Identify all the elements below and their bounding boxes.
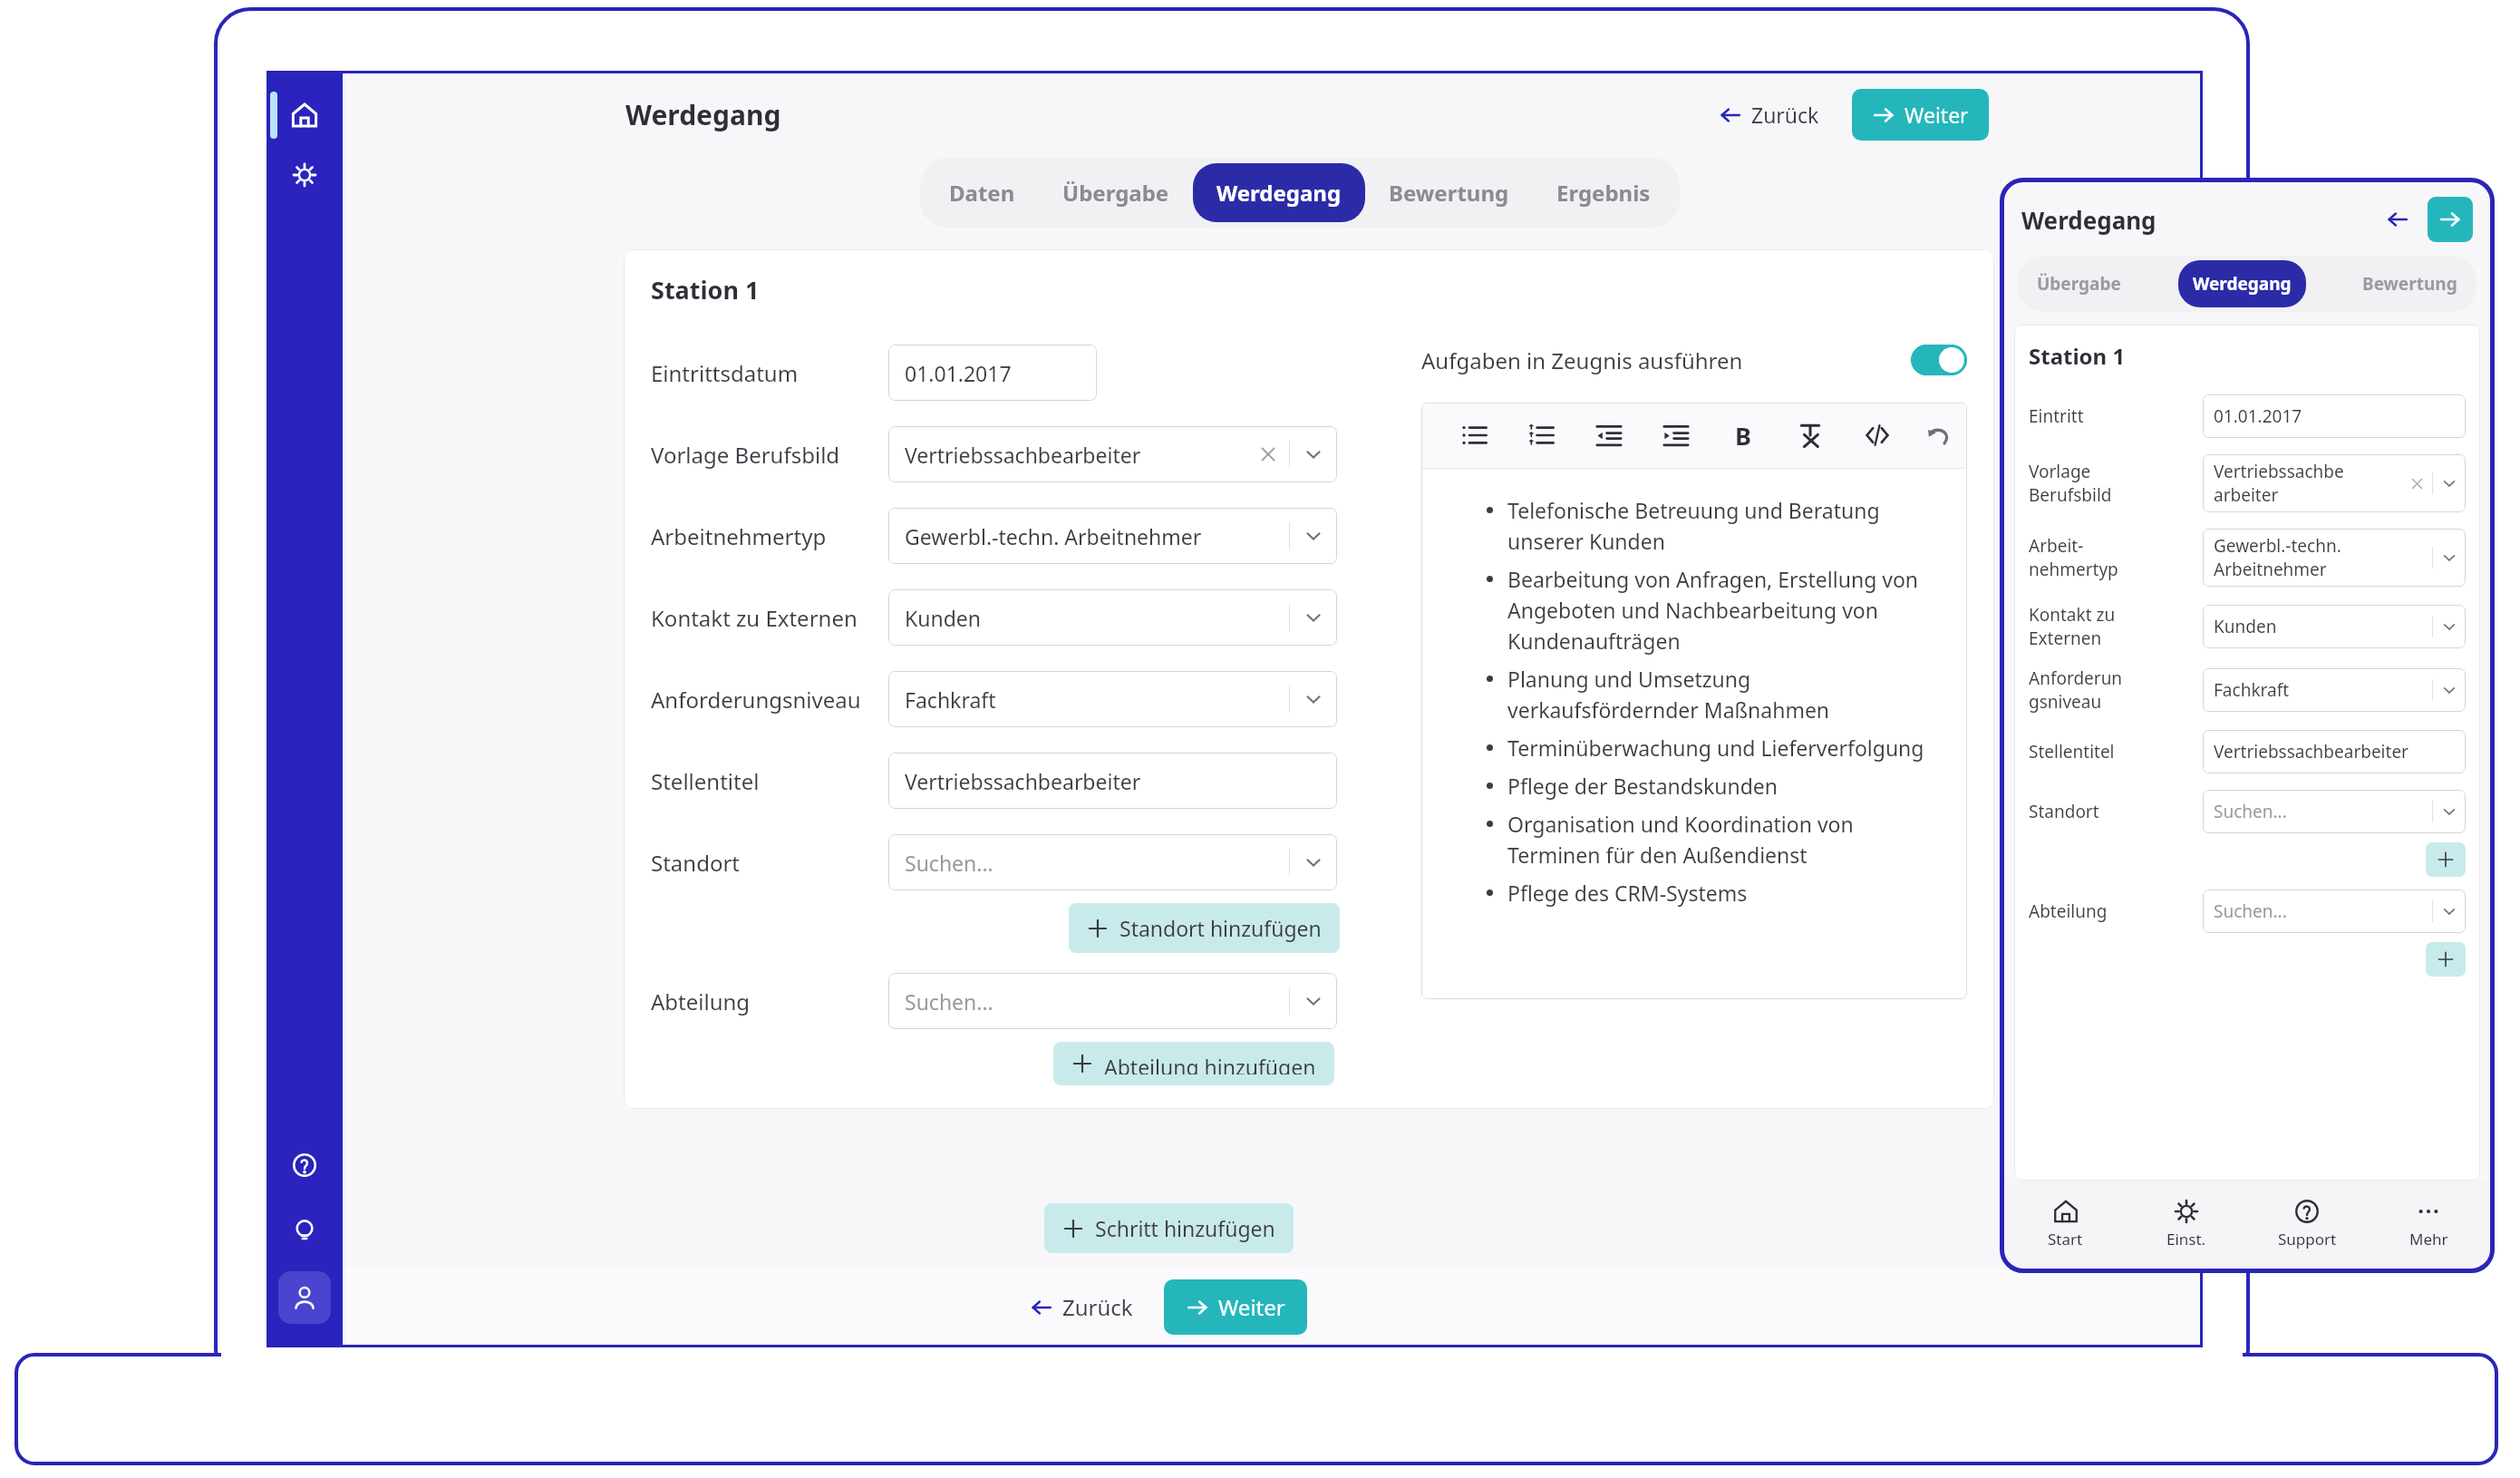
button[interactable]: Fachkraft (2203, 668, 2466, 712)
button[interactable]: Kunden (888, 589, 1337, 646)
staticText: Werdegang (1216, 178, 1342, 208)
button[interactable]: Suchen... (888, 834, 1337, 890)
button[interactable]: Mehr (2368, 1181, 2489, 1268)
button[interactable]: Übergabe (2022, 260, 2136, 307)
button[interactable]: Start (2005, 1181, 2126, 1268)
button[interactable]: Hinzufügen (2426, 942, 2466, 977)
button[interactable]: Hinzufügen (2426, 842, 2466, 877)
button[interactable]: Schritt hinzufügen (1044, 1203, 1294, 1253)
button[interactable]: Zurück (1710, 93, 1828, 136)
button[interactable]: 01.01.2017 (2203, 394, 2466, 438)
button[interactable]: Profil (278, 1271, 331, 1324)
staticText: Daten (949, 178, 1015, 208)
button[interactable]: Bewertung (1365, 163, 1533, 222)
staticText: Standort hinzufügen (1119, 914, 1322, 942)
button[interactable]: Fachkraft (888, 671, 1337, 727)
button[interactable]: Gewerbl.-techn. Arbeitnehmer (2203, 529, 2466, 587)
staticText: Station 1 (651, 273, 760, 306)
button[interactable]: Code (1844, 403, 1911, 468)
button[interactable]: Vertriebssachbearbeiter (888, 753, 1337, 809)
button[interactable]: Vertriebssachbearbeiter (2203, 730, 2466, 773)
button[interactable]: Start (280, 91, 329, 140)
button[interactable]: Zurück (1021, 1285, 1142, 1329)
staticText: Gewerbl.-techn. Arbeitnehmer (2214, 534, 2400, 581)
button[interactable]: Einstellungen (280, 151, 329, 199)
staticText: 01.01.2017 (2214, 404, 2302, 428)
staticText: Vertriebssachbe arbeiter (2214, 460, 2400, 507)
button[interactable]: Kunden (2203, 605, 2466, 648)
button[interactable]: Bewertung (2348, 260, 2472, 307)
button[interactable]: 01.01.2017 (888, 345, 1097, 401)
button[interactable]: Support (2246, 1181, 2368, 1268)
button[interactable]: Zurück (2379, 200, 2417, 238)
staticText: Suchen... (2214, 800, 2287, 823)
staticText: Vorlage Berufsbild (651, 440, 888, 470)
staticText: Eintritt (2029, 404, 2165, 428)
button[interactable]: Übergabe (1039, 163, 1193, 222)
staticText: Suchen... (905, 849, 993, 877)
staticText: Zurück (1751, 101, 1819, 129)
staticText: Vertriebssachbearbeiter (905, 767, 1141, 795)
staticText: B (1735, 419, 1751, 452)
button[interactable]: Gewerbl.-techn. Arbeitnehmer (888, 508, 1337, 564)
button[interactable]: Suchen... (2203, 890, 2466, 933)
staticText: Standort (2029, 800, 2165, 823)
button[interactable]: Daten (926, 163, 1039, 222)
staticText: Kontakt zu Externen (651, 603, 888, 633)
button[interactable]: Aufzählung (1441, 403, 1508, 468)
staticText: Weiter (1905, 101, 1969, 129)
staticText: Anforderungsniveau (651, 685, 888, 715)
button[interactable]: Format löschen (1777, 403, 1844, 468)
staticText: Bewertung (2362, 272, 2457, 296)
staticText: Pflege des CRM-Systems (1507, 879, 1748, 907)
button[interactable]: Suchen... (2203, 790, 2466, 833)
staticText: Stellentitel (2029, 740, 2165, 763)
staticText: Abteilung (2029, 899, 2165, 923)
button[interactable]: Fett (1710, 403, 1777, 468)
button[interactable]: Werdegang (1193, 163, 1365, 222)
staticText: Eintrittsdatum (651, 358, 888, 388)
button[interactable]: Ergebnis (1533, 163, 1674, 222)
button[interactable]: Hilfe (280, 1141, 329, 1190)
staticText: Stellentitel (651, 766, 888, 796)
staticText: Support (2278, 1229, 2337, 1249)
button[interactable]: Abteilung hinzufügen (1053, 1042, 1334, 1085)
button[interactable]: Einrücken (1643, 403, 1710, 468)
staticText: Abteilung hinzufügen (1104, 1053, 1316, 1074)
button[interactable]: Vertriebssachbe arbeiter (2203, 454, 2466, 512)
staticText: Übergabe (1062, 178, 1169, 208)
staticText: Abteilung (651, 987, 888, 1016)
staticText: Weiter (1218, 1292, 1285, 1322)
staticText: Standort (651, 848, 888, 878)
staticText: Ergebnis (1556, 178, 1651, 208)
staticText: Suchen... (2214, 899, 2287, 923)
staticText: Werdegang (625, 96, 781, 133)
staticText: Arbeit- nehmertyp (2029, 534, 2165, 581)
button[interactable]: Ausrücken (1575, 403, 1643, 468)
button[interactable]: Werdegang (2178, 260, 2306, 307)
button[interactable]: Einst. (2126, 1181, 2246, 1268)
staticText: Planung und Umsetzung verkaufsfördernder… (1507, 665, 1927, 724)
button[interactable]: Weiter (2428, 197, 2473, 242)
staticText: Pflege der Bestandskunden (1507, 772, 1778, 800)
button[interactable]: Rückgängig (1911, 403, 1967, 468)
staticText: Vertriebssachbearbeiter (905, 441, 1141, 469)
button[interactable]: Standort hinzufügen (1069, 903, 1340, 953)
staticText: Zurück (1062, 1292, 1133, 1322)
staticText: Mehr (2409, 1229, 2448, 1249)
staticText: Fachkraft (2214, 678, 2290, 702)
button[interactable]: Suchen... (888, 973, 1337, 1029)
button[interactable]: Weiter (1164, 1279, 1307, 1335)
staticText: Schritt hinzufügen (1095, 1214, 1275, 1242)
staticText: Vertriebssachbearbeiter (2214, 740, 2409, 763)
button[interactable]: Nummerierte Liste (1508, 403, 1575, 468)
button[interactable]: Vertriebssachbearbeiter (888, 426, 1337, 482)
staticText: Arbeitnehmertyp (651, 521, 888, 551)
button[interactable]: Schalter (1911, 345, 1967, 375)
staticText: Organisation und Koordination von Termin… (1507, 810, 1927, 869)
staticText: Kunden (905, 604, 981, 632)
button[interactable]: Weiter (1852, 89, 1989, 141)
staticText: Werdegang (2193, 272, 2292, 296)
button[interactable]: Ideen (280, 1206, 329, 1255)
staticText: 01.01.2017 (905, 359, 1012, 387)
